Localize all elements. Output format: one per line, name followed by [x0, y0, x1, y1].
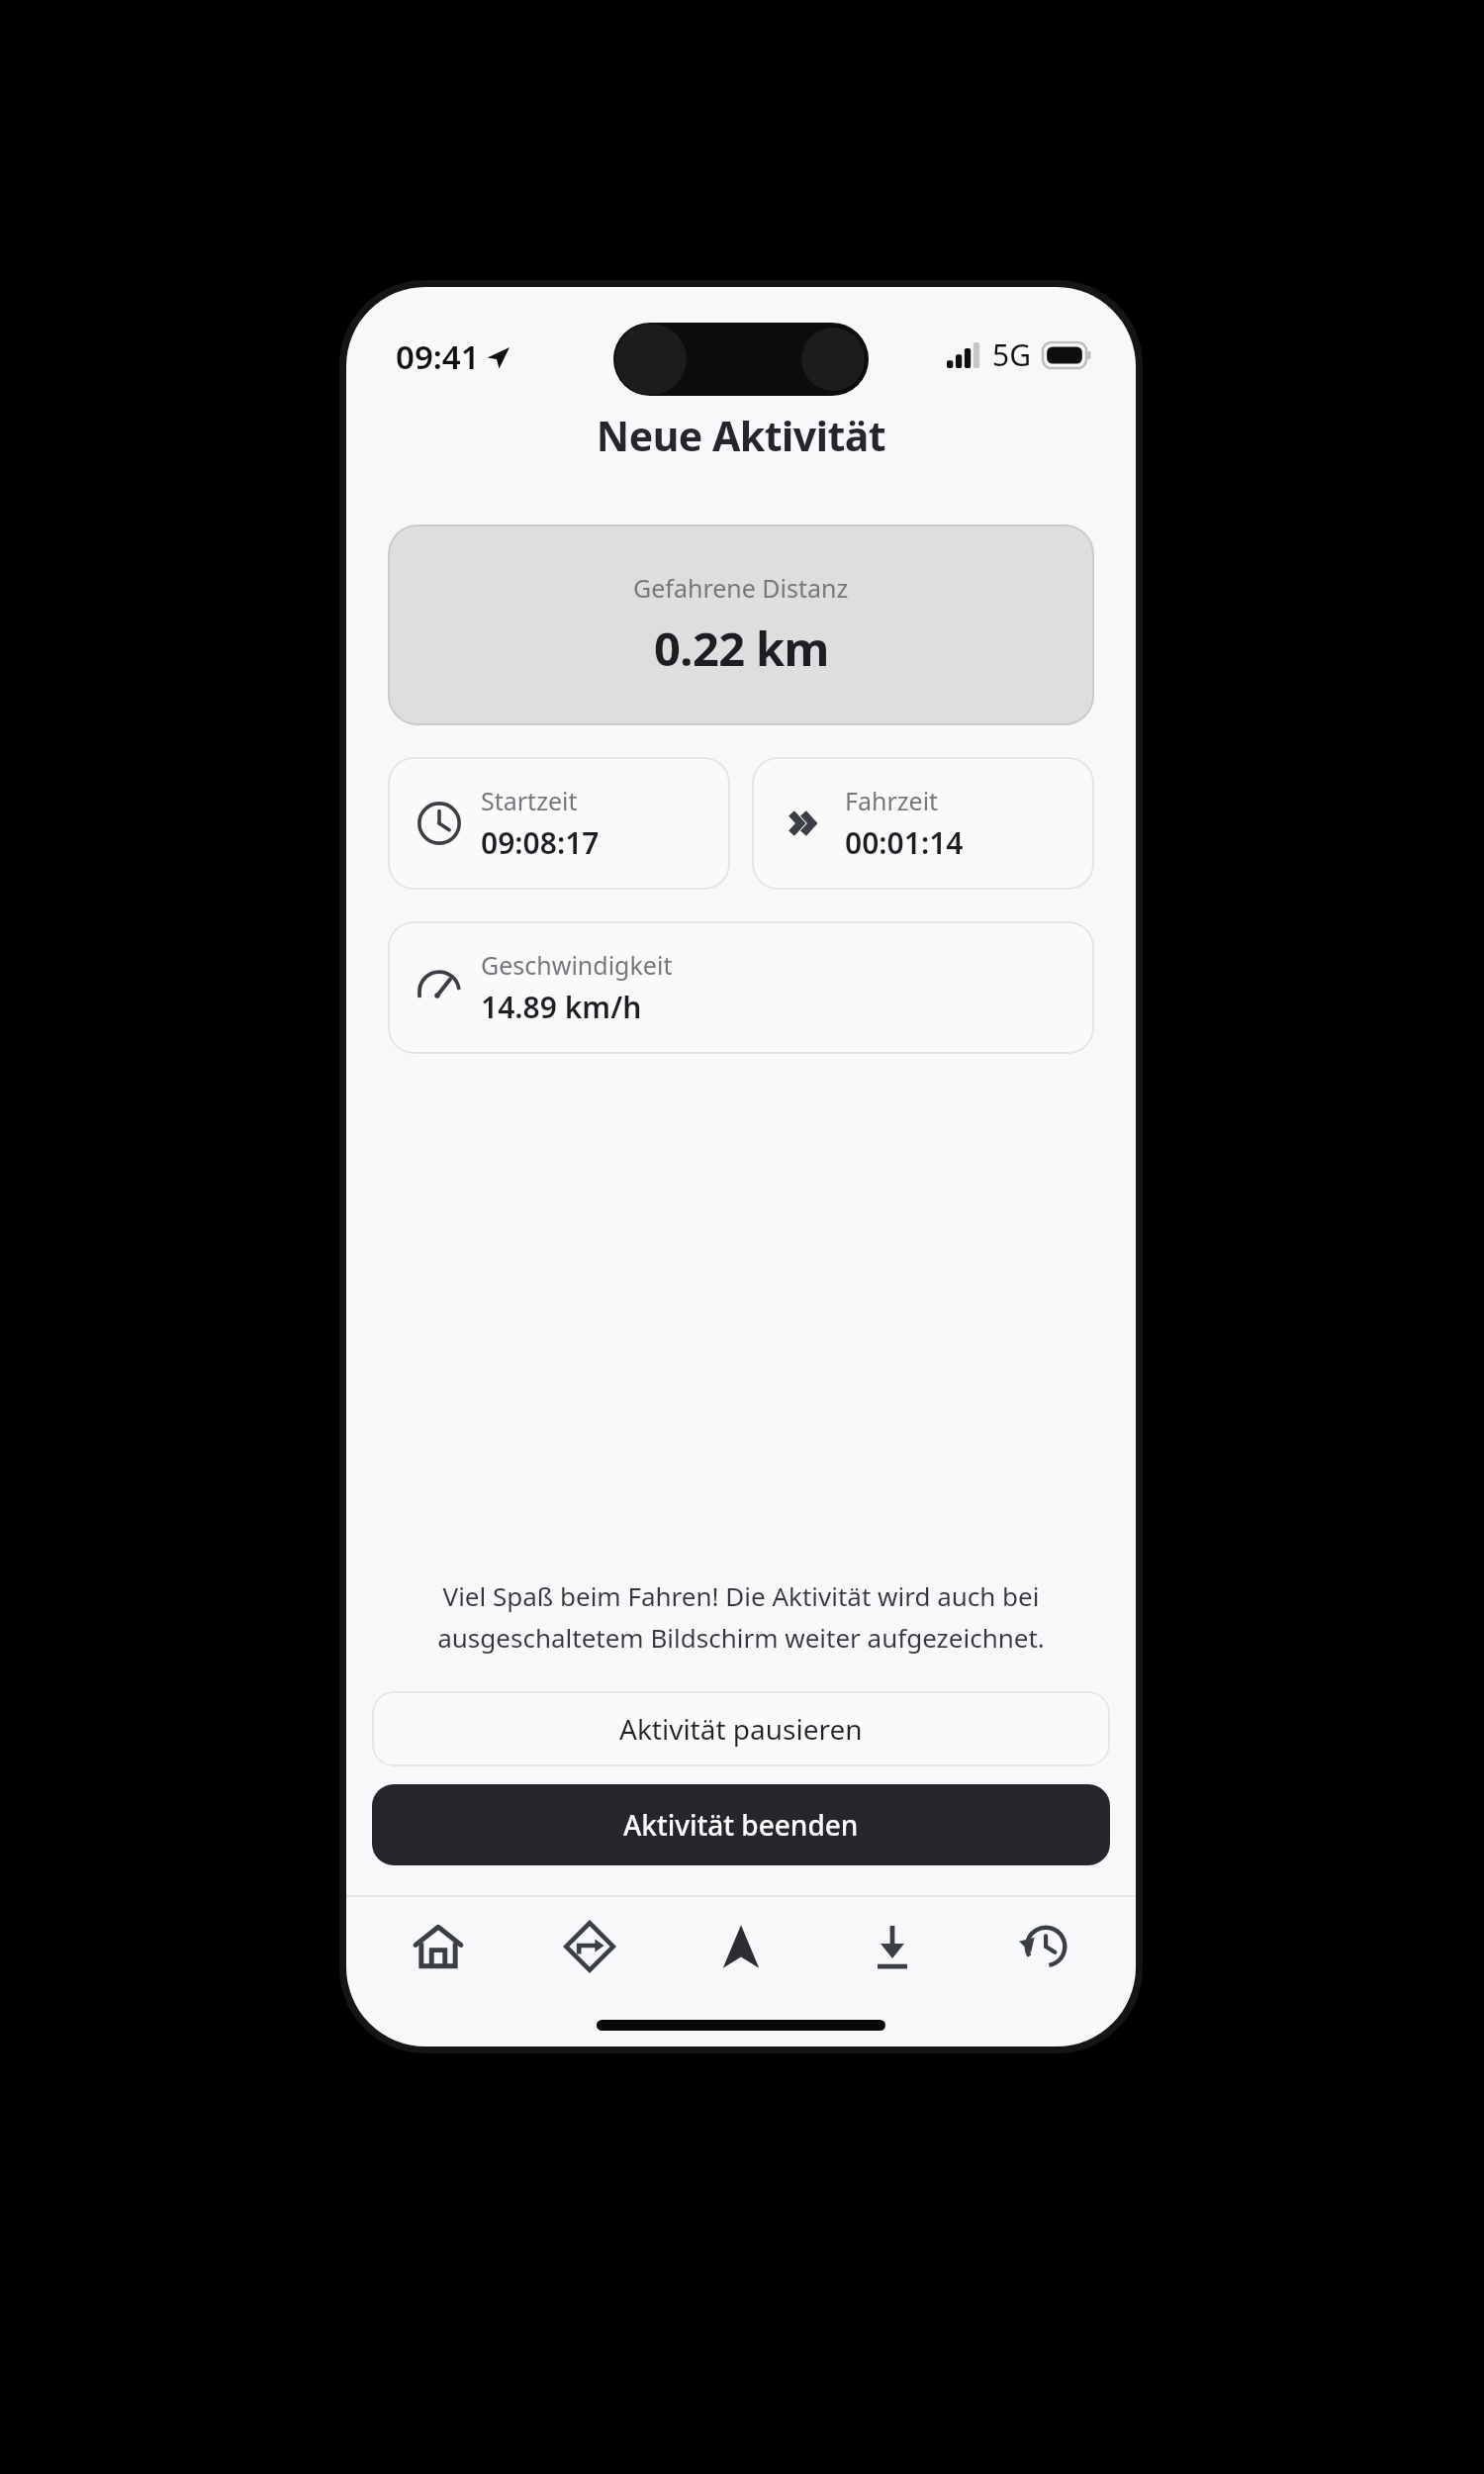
staticText: Viel Spaß beim Fahren! Die Aktivität wir… [372, 1578, 1110, 1656]
staticText: 0.22 km [654, 617, 829, 680]
staticText: Aktivität beenden [623, 1806, 859, 1844]
staticText: 09:08:17 [481, 822, 600, 863]
button[interactable]: Aktivität beenden [372, 1784, 1110, 1865]
staticText: Startzeit [481, 784, 578, 817]
button[interactable]: Geschwindigkeit [388, 921, 1094, 1054]
staticText: Neue Aktivität [346, 408, 1136, 463]
button[interactable]: Startzeit [388, 757, 730, 890]
button[interactable]: Gefahrene Distanz [388, 524, 1094, 725]
staticText: Aktivität pausieren [619, 1710, 863, 1748]
button[interactable]: Download [833, 1899, 952, 1994]
staticText: 09:41 [396, 334, 480, 379]
button[interactable]: History [984, 1899, 1103, 1994]
staticText: Fahrzeit [845, 784, 939, 817]
staticText: 5G [992, 334, 1031, 375]
staticText: Geschwindigkeit [481, 948, 673, 982]
button[interactable]: Track [682, 1899, 800, 1994]
button[interactable]: Home [379, 1899, 498, 1994]
staticText: 00:01:14 [845, 822, 964, 863]
staticText: Gefahrene Distanz [633, 571, 849, 605]
button[interactable]: Fahrzeit [752, 757, 1094, 890]
button[interactable]: Aktivität pausieren [372, 1691, 1110, 1766]
button[interactable]: Directions [530, 1899, 649, 1994]
staticText: 14.89 km/h [481, 987, 642, 1027]
